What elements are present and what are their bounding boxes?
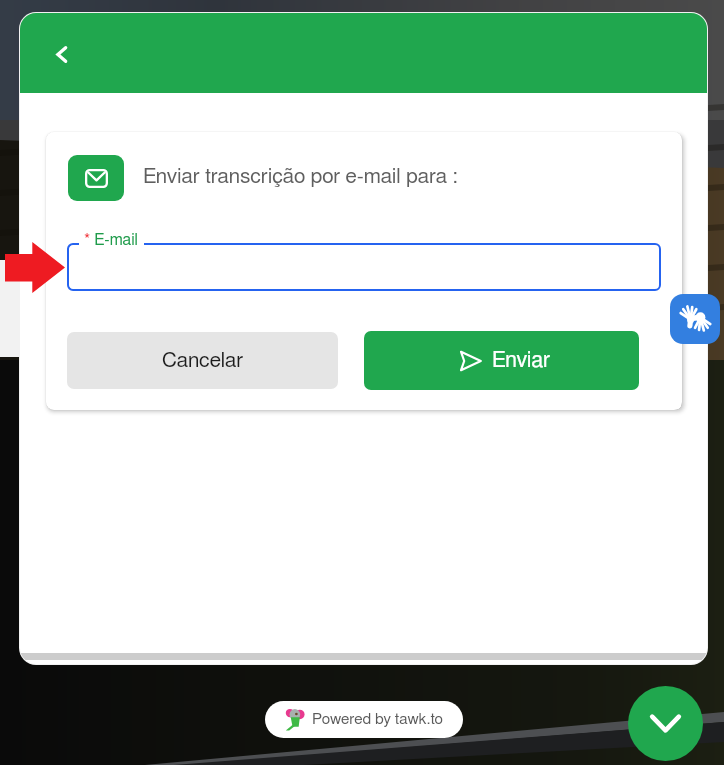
staticText: Enviar transcrição por e-mail para : xyxy=(143,166,458,187)
staticText: Enviar xyxy=(492,350,551,372)
button[interactable]: Enviar xyxy=(364,331,639,390)
button[interactable]: Cancelar xyxy=(67,332,338,389)
staticText: Cancelar xyxy=(162,350,244,371)
button[interactable]: Back xyxy=(39,32,83,76)
button[interactable] xyxy=(67,243,661,291)
staticText: Powered by tawk.to xyxy=(312,712,443,728)
button[interactable]: Accessibility xyxy=(670,294,720,344)
button[interactable]: Powered by tawk.to xyxy=(265,701,463,738)
button[interactable]: Minimise chat xyxy=(628,686,703,761)
staticText: * E-mail xyxy=(84,232,139,248)
